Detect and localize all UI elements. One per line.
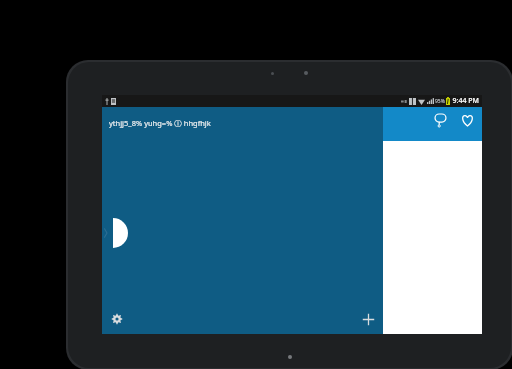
staticText: 9:44 PM [452, 96, 479, 106]
staticText: 95% [435, 98, 445, 105]
button[interactable]: Add [357, 308, 379, 330]
staticText: ythjj5_8% yuhg=% ⓘ hhgfhjk [109, 118, 211, 128]
button[interactable]: Comments [428, 108, 452, 132]
button[interactable]: Favorite [455, 108, 479, 132]
button[interactable]: Settings [106, 308, 128, 330]
button[interactable]: Open drawer [102, 218, 113, 248]
